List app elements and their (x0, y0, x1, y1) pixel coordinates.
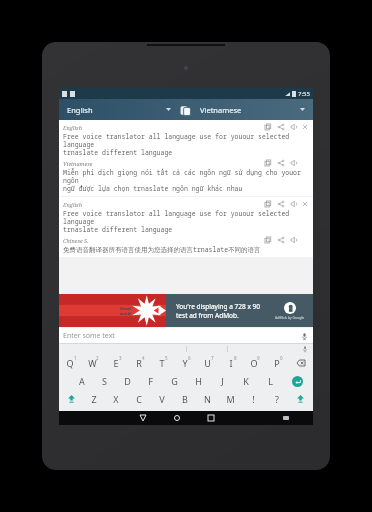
button[interactable]: Home (160, 411, 194, 425)
button[interactable]: Speak (289, 235, 299, 245)
button[interactable]: Voice typing (301, 345, 309, 353)
staticText: Y (182, 357, 188, 369)
button[interactable]: Speak (289, 158, 299, 168)
staticText: Miễn phí dịch giọng nói tất cả các ngôn … (63, 168, 309, 193)
button[interactable]: M (219, 390, 242, 408)
button[interactable]: A (70, 372, 93, 390)
button[interactable]: Enter (283, 373, 312, 389)
staticText: H (195, 375, 202, 387)
button[interactable]: F (139, 372, 162, 390)
staticText: O (250, 357, 258, 369)
staticText: K (243, 375, 249, 387)
button[interactable]: S (93, 372, 116, 390)
button[interactable]: Swap languages (179, 103, 192, 117)
staticText: 免费语音翻译器所有语言使用为您选择的语言trnaslate不同的语言 (63, 245, 261, 254)
staticText: 3 (119, 355, 122, 361)
button[interactable]: Speak (289, 122, 299, 132)
button[interactable]: K (234, 372, 258, 390)
button[interactable]: Shift (288, 390, 313, 408)
button[interactable]: Share (276, 199, 286, 209)
button[interactable]: D (116, 372, 139, 390)
staticText: Great (120, 306, 132, 311)
button[interactable]: L (258, 372, 282, 390)
staticText: M (226, 393, 235, 405)
button[interactable]: R (127, 354, 150, 372)
button[interactable]: , (92, 408, 113, 425)
staticText: X (113, 393, 119, 405)
staticText: 6 (188, 355, 191, 361)
button[interactable]: Copy (263, 122, 273, 132)
button[interactable]: Great (59, 294, 313, 327)
button[interactable]: Recent apps (194, 411, 228, 425)
button[interactable]: I (219, 354, 242, 372)
staticText: N (204, 393, 211, 405)
staticText: D (124, 375, 131, 387)
staticText: 7 (211, 355, 214, 361)
staticText: C (136, 393, 142, 405)
staticText: Free voice translator all language use f… (63, 209, 309, 234)
staticText: T (159, 357, 165, 369)
button[interactable]: N (196, 390, 219, 408)
staticText: L (268, 375, 273, 387)
button[interactable]: Speak (289, 199, 299, 209)
button[interactable]: Space (113, 413, 264, 420)
button[interactable]: T (150, 354, 173, 372)
button[interactable]: Y (173, 354, 196, 372)
button[interactable]: B (173, 390, 196, 408)
button[interactable]: Copy (263, 158, 273, 168)
button[interactable]: . (264, 408, 285, 425)
staticText: J (221, 375, 224, 387)
button[interactable]: O (242, 354, 265, 372)
button[interactable]: Share (276, 158, 286, 168)
button[interactable]: W (81, 354, 104, 372)
button[interactable]: English (59, 99, 179, 120)
staticText: F (148, 375, 153, 387)
staticText: E (113, 357, 119, 369)
button[interactable]: H (186, 372, 210, 390)
button[interactable]: Backspace (288, 354, 313, 372)
button[interactable]: Share (276, 122, 286, 132)
button[interactable]: ?123 (59, 408, 92, 425)
button[interactable]: X (105, 390, 127, 408)
button[interactable]: Voice input (299, 331, 309, 341)
button[interactable]: G (162, 372, 186, 390)
button[interactable]: Close (301, 123, 309, 131)
staticText: 4 (142, 355, 145, 361)
staticText: Enter some text (63, 331, 115, 341)
staticText: 8 (234, 355, 237, 361)
staticText: AdMob by Google (275, 315, 305, 320)
staticText: 1 (74, 355, 77, 361)
button[interactable]: Q (59, 354, 81, 372)
button[interactable]: Change keyboard (269, 411, 303, 425)
staticText: Vietnamese (200, 105, 242, 115)
staticText: 7:55 (298, 90, 310, 98)
button[interactable]: Back (126, 411, 160, 425)
button[interactable]: Emoji (285, 408, 313, 425)
button[interactable]: Share (276, 235, 286, 245)
button[interactable]: Copy (263, 235, 273, 245)
button[interactable]: English (59, 120, 313, 196)
button[interactable]: Vietnamese (192, 99, 313, 120)
button[interactable]: ! (242, 390, 265, 408)
staticText: S (102, 375, 107, 387)
button[interactable]: English (59, 197, 313, 257)
staticText: Q (66, 357, 74, 369)
button[interactable]: E (104, 354, 127, 372)
button[interactable]: P (265, 354, 288, 372)
button[interactable]: J (210, 372, 234, 390)
staticText: You're displaying a 728 x 90 test ad fro… (176, 302, 261, 320)
button[interactable]: C (127, 390, 150, 408)
staticText: Z (91, 393, 97, 405)
button[interactable]: Copy (263, 199, 273, 209)
button[interactable]: ? (265, 390, 288, 408)
staticText: 5 (165, 355, 168, 361)
button[interactable]: Z (83, 390, 105, 408)
button[interactable]: V (150, 390, 173, 408)
button[interactable]: U (196, 354, 219, 372)
button[interactable]: Shift (59, 390, 83, 408)
staticText: U (204, 357, 211, 369)
button[interactable]: Close (301, 200, 309, 208)
staticText: 0 (280, 355, 283, 361)
